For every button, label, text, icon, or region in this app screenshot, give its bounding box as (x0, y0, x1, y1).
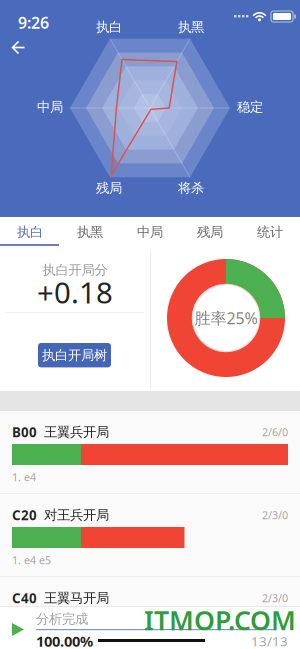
staticText: 王翼兵开局 (44, 424, 109, 440)
staticText: 1. e4 e5 (12, 553, 51, 567)
staticText: 执黑 (178, 19, 204, 35)
staticText: 王翼马开局 (44, 590, 109, 606)
staticText: 胜率25% (194, 307, 257, 329)
button[interactable]: Play (0, 606, 300, 649)
button[interactable]: 中局 (120, 217, 180, 247)
staticText: 2/3/0 (262, 591, 288, 605)
staticText: 稳定 (237, 99, 263, 115)
staticText: 对王兵开局 (44, 507, 109, 523)
staticText: 分析完成 (36, 611, 88, 627)
staticText: 1. e4 (12, 470, 36, 484)
staticText: 执白 (96, 19, 122, 35)
staticText: 1. e4 e5 2. Nf3 (12, 636, 84, 649)
staticText: 13/13 (251, 632, 288, 649)
staticText: 2/6/0 (262, 425, 288, 439)
button[interactable]: 执白开局树 (38, 343, 111, 367)
staticText: 统计 (257, 224, 283, 240)
button[interactable]: 残局 (180, 217, 240, 247)
staticText: 执白开局分 (42, 262, 107, 278)
staticText: +0.18 (37, 272, 113, 311)
staticText: 执黑 (77, 224, 103, 240)
button[interactable]: 执白 (0, 217, 60, 247)
staticText: C20 (12, 506, 37, 524)
staticText: 执白 (17, 224, 43, 240)
button[interactable]: 执黑 (60, 217, 120, 247)
staticText: 中局 (137, 224, 163, 240)
staticText: 中局 (37, 99, 63, 115)
staticText: 残局 (197, 224, 223, 240)
staticText: 100.00% (36, 631, 93, 649)
button[interactable]: C40 (0, 577, 300, 649)
staticText: C40 (12, 589, 37, 607)
button[interactable]: 统计 (240, 217, 300, 247)
staticText: 9:26 (18, 12, 49, 33)
staticText: 残局 (96, 180, 122, 196)
staticText: ITMOP.COM (144, 602, 296, 638)
staticText: 将杀 (178, 180, 204, 196)
button[interactable]: Back (0, 0, 300, 217)
staticText: 2/3/0 (262, 508, 288, 522)
staticText: B00 (12, 423, 37, 441)
button[interactable]: C20 (0, 494, 300, 577)
button[interactable]: B00 (0, 411, 300, 494)
staticText: 执白开局树 (42, 347, 107, 363)
